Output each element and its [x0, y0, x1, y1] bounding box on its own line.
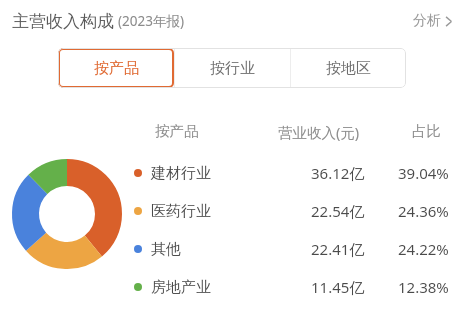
button[interactable]: 房地产业 [0, 272, 466, 302]
staticText: 按产品 [155, 122, 199, 140]
staticText: 11.45亿 [311, 277, 365, 297]
staticText: 39.04% [398, 163, 449, 183]
staticText: 36.12亿 [311, 163, 365, 183]
staticText: 其他 [151, 240, 181, 259]
staticText: 22.41亿 [311, 239, 365, 259]
staticText: 24.22% [398, 239, 449, 259]
staticText: 医药行业 [151, 202, 211, 221]
button[interactable]: 按行业 [175, 48, 290, 88]
staticText: 主营收入构成 [12, 11, 114, 32]
staticText: 按地区 [326, 59, 371, 78]
staticText: 建材行业 [151, 164, 211, 183]
staticText: 12.38% [398, 277, 449, 297]
staticText: 房地产业 [151, 278, 211, 297]
staticText: 占比 [412, 122, 441, 140]
button[interactable]: 建材行业 [0, 158, 466, 188]
staticText: 24.36% [398, 201, 449, 221]
button[interactable]: 按产品 [58, 48, 174, 88]
staticText: 按行业 [210, 59, 255, 78]
button[interactable]: 医药行业 [0, 196, 466, 226]
staticText: 22.54亿 [311, 201, 365, 221]
staticText: 按产品 [94, 59, 139, 78]
button[interactable]: 分析 [411, 8, 454, 34]
staticText: 营业收入(元) [278, 122, 360, 142]
staticText: 分析 [413, 12, 441, 30]
staticText: (2023年报) [118, 12, 184, 30]
button[interactable]: 其他 [0, 234, 466, 264]
button[interactable]: 按地区 [291, 48, 406, 88]
